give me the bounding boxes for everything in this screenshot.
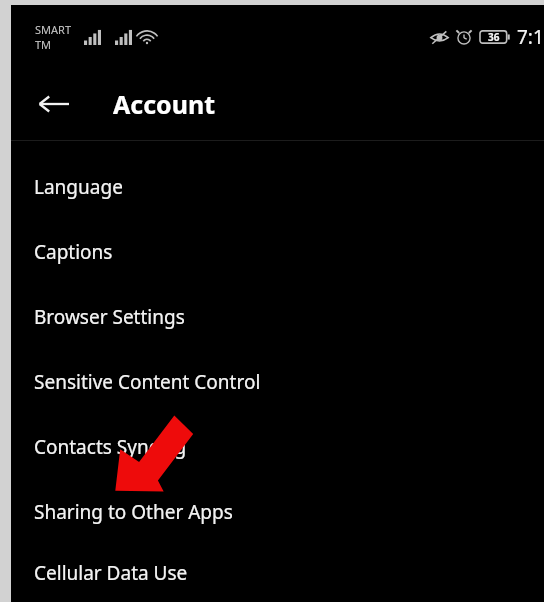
staticText: Captions	[34, 239, 113, 265]
staticText: Contacts Syncing	[34, 434, 187, 460]
staticText: Sharing to Other Apps	[34, 499, 233, 525]
staticText: Account	[113, 87, 216, 121]
button[interactable]: Language	[11, 154, 544, 219]
staticText: Language	[34, 174, 123, 200]
button[interactable]: Sensitive Content Control	[11, 349, 544, 414]
staticText: 36	[488, 30, 500, 44]
button[interactable]: Sharing to Other Apps	[11, 479, 544, 544]
button[interactable]: Back	[31, 81, 77, 127]
staticText: 7:1	[517, 24, 544, 50]
button[interactable]: Contacts Syncing	[11, 414, 544, 479]
staticText: SMART	[35, 22, 72, 37]
staticText: Cellular Data Use	[34, 560, 188, 586]
button[interactable]: Browser Settings	[11, 284, 544, 349]
button[interactable]: Cellular Data Use	[11, 544, 544, 602]
staticText: TM	[35, 37, 52, 52]
staticText: Browser Settings	[34, 304, 185, 330]
button[interactable]: Captions	[11, 219, 544, 284]
staticText: Sensitive Content Control	[34, 369, 261, 395]
